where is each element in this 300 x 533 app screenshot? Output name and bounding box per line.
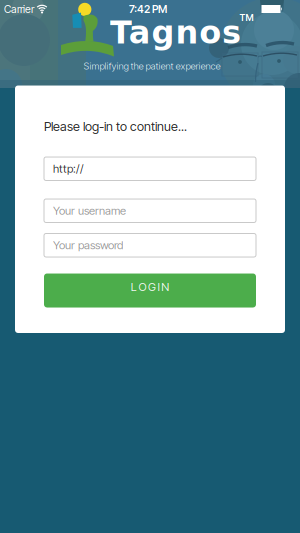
staticText: Tagnos <box>110 14 241 51</box>
staticText: http:// <box>53 162 84 176</box>
staticText: LOGIN <box>131 280 169 294</box>
staticText: Carrier <box>4 2 34 15</box>
button[interactable]: Your password <box>44 233 256 257</box>
button[interactable]: Your username <box>44 199 256 222</box>
staticText: Simplifying the patient experience <box>83 60 220 72</box>
staticText: Your password <box>53 238 123 252</box>
staticText: Please log-in to continue... <box>44 119 187 134</box>
button[interactable]: LOGIN <box>44 273 256 307</box>
button[interactable]: http:// <box>44 157 256 180</box>
staticText: Your username <box>53 204 126 218</box>
staticText: 7:42 PM <box>129 2 167 15</box>
staticText: TM <box>239 12 253 23</box>
